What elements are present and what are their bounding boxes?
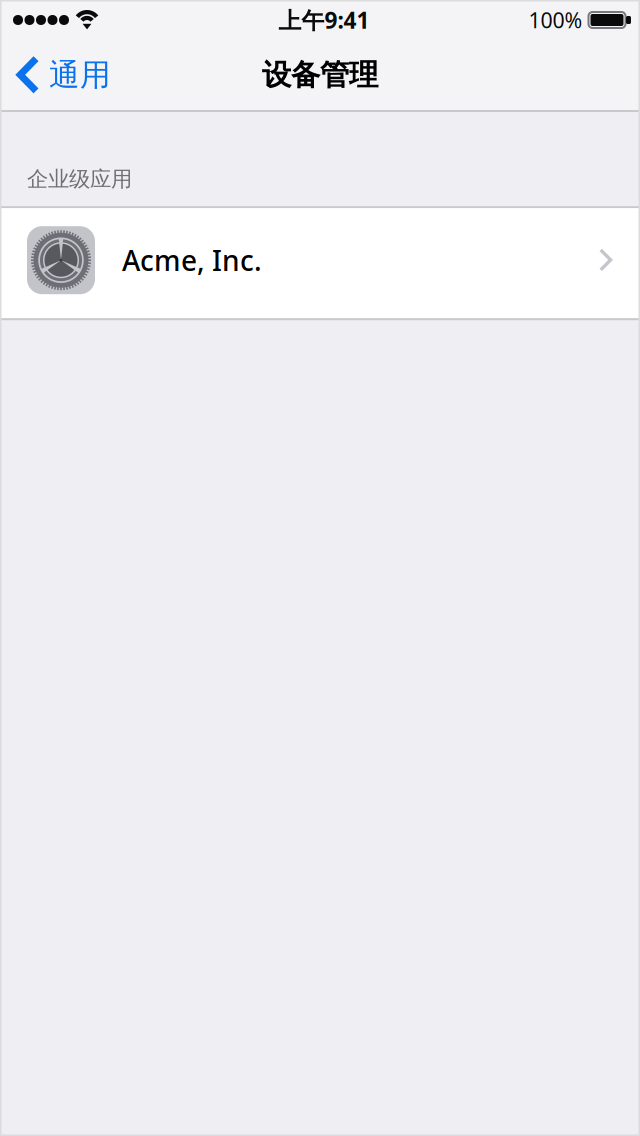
staticText: 设备管理 xyxy=(262,57,378,93)
staticText: 100% xyxy=(528,6,582,34)
staticText: 上午9:41 xyxy=(278,5,369,35)
staticText: 通用 xyxy=(49,56,111,94)
button[interactable]: Acme, Inc. xyxy=(0,208,640,318)
staticText: 企业级应用 xyxy=(27,166,132,192)
staticText: Acme, Inc. xyxy=(122,242,262,279)
button[interactable]: 通用 xyxy=(0,40,125,110)
